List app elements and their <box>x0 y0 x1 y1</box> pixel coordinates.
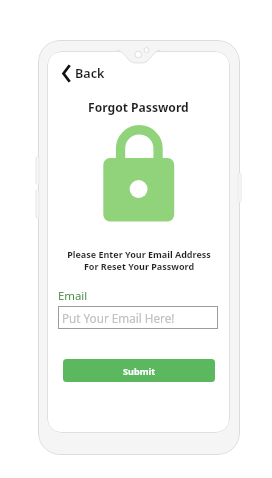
staticText: Submit <box>123 365 156 377</box>
button[interactable]: Submit <box>63 359 215 382</box>
staticText: Forgot Password <box>88 99 189 115</box>
button[interactable]: Back <box>59 61 108 86</box>
staticText: Back <box>75 65 105 82</box>
staticText: Put Your Email Here! <box>62 310 175 326</box>
other: Back <box>62 64 71 83</box>
staticText: Email <box>58 288 88 304</box>
button[interactable]: Put Your Email Here! <box>58 306 218 329</box>
staticText: Please Enter Your Email Address For Rese… <box>67 248 211 273</box>
